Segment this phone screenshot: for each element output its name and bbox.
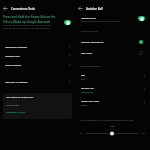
staticText: Press and Hold the Power Button for 0.5s… [3,15,56,23]
button[interactable]: Assistive Ball [75,13,150,24]
staticText: You might be looking for [6,96,34,99]
staticText: 50% [75,125,150,128]
button[interactable]: Toggle on [64,20,71,25]
staticText: Supports customized gestures and operati… [81,20,120,22]
staticText: Tap [81,73,86,76]
button[interactable]: Not selected [139,51,143,55]
button[interactable]: Smart Sidebar [0,60,75,69]
staticText: Assistive Ball [5,54,68,57]
button[interactable]: Gesture Operations [75,36,150,47]
button[interactable]: Toggle on [138,16,145,21]
staticText: Tap Menu [81,51,139,54]
button[interactable]: Back [0,0,75,17]
button[interactable]: Assistive Ball [0,51,75,60]
button[interactable]: Transparency slider [85,131,139,136]
staticText: Double-tap [81,86,94,89]
staticText: Navigation Buttons [5,45,68,48]
staticText: Smart Sidebar [5,63,68,66]
staticText: 100% [141,132,146,135]
button[interactable]: Tap Menu [75,47,150,58]
button[interactable]: Selected [139,40,143,44]
button[interactable]: Back [3,6,8,11]
button[interactable]: Automatic on-off [6,111,25,114]
button[interactable]: Touch and Hold [75,96,150,109]
staticText: Press and hold the Power button for 0.5s… [3,24,51,30]
staticText: Back [81,78,86,81]
button[interactable]: Back [75,0,150,17]
staticText: Convenience Tools [11,7,35,11]
staticText: TRANSPARENCY OF THE ASSISTIVE BALL WHEN … [81,119,134,122]
staticText: Assistive Ball [81,16,96,19]
staticText: Assistive Ball [86,7,103,11]
staticText: Gestures & Motions [5,80,68,83]
staticText: Touch and Hold [81,99,99,102]
staticText: Home [81,104,87,107]
staticText: OPERATION MODE [81,30,98,32]
staticText: Gesture Operations [81,40,139,43]
button[interactable]: Back [78,6,83,11]
staticText: Multitasking [81,91,93,94]
staticText: 10% [79,132,83,135]
button[interactable]: Double-tap [75,83,150,96]
button[interactable]: Accessibility [6,104,20,107]
button[interactable]: Gestures & Motions [0,77,75,86]
button[interactable]: Navigation Buttons [0,42,75,51]
button[interactable]: Tap [75,70,150,83]
staticText: GESTURE OPERATIONS [81,65,102,67]
